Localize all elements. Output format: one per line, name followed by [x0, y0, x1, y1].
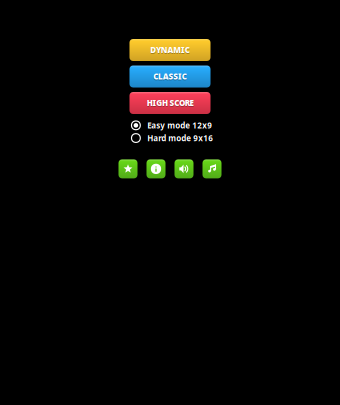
button[interactable]: Easy mode 12x9 [131, 119, 209, 132]
button[interactable]: CLASSIC [129, 65, 210, 87]
staticText: HIGH SCORE [147, 98, 193, 108]
button[interactable]: Rate this app [118, 159, 137, 178]
staticText: CLASSIC [153, 72, 187, 83]
button[interactable]: DYNAMIC [129, 39, 210, 61]
button[interactable]: Hard mode 9x16 [131, 132, 209, 144]
button[interactable]: Music [202, 159, 221, 178]
staticText: DYNAMIC [150, 45, 190, 55]
staticText: Easy mode 12x9 [147, 120, 212, 131]
button[interactable]: About [146, 159, 165, 178]
staticText: DYNAMIC [150, 45, 190, 56]
button[interactable]: Sound effects [174, 159, 193, 178]
button[interactable]: HIGH SCORE [129, 92, 210, 114]
staticText: HIGH SCORE [147, 98, 193, 109]
staticText: CLASSIC [153, 71, 187, 82]
staticText: Hard mode 9x16 [147, 133, 213, 143]
